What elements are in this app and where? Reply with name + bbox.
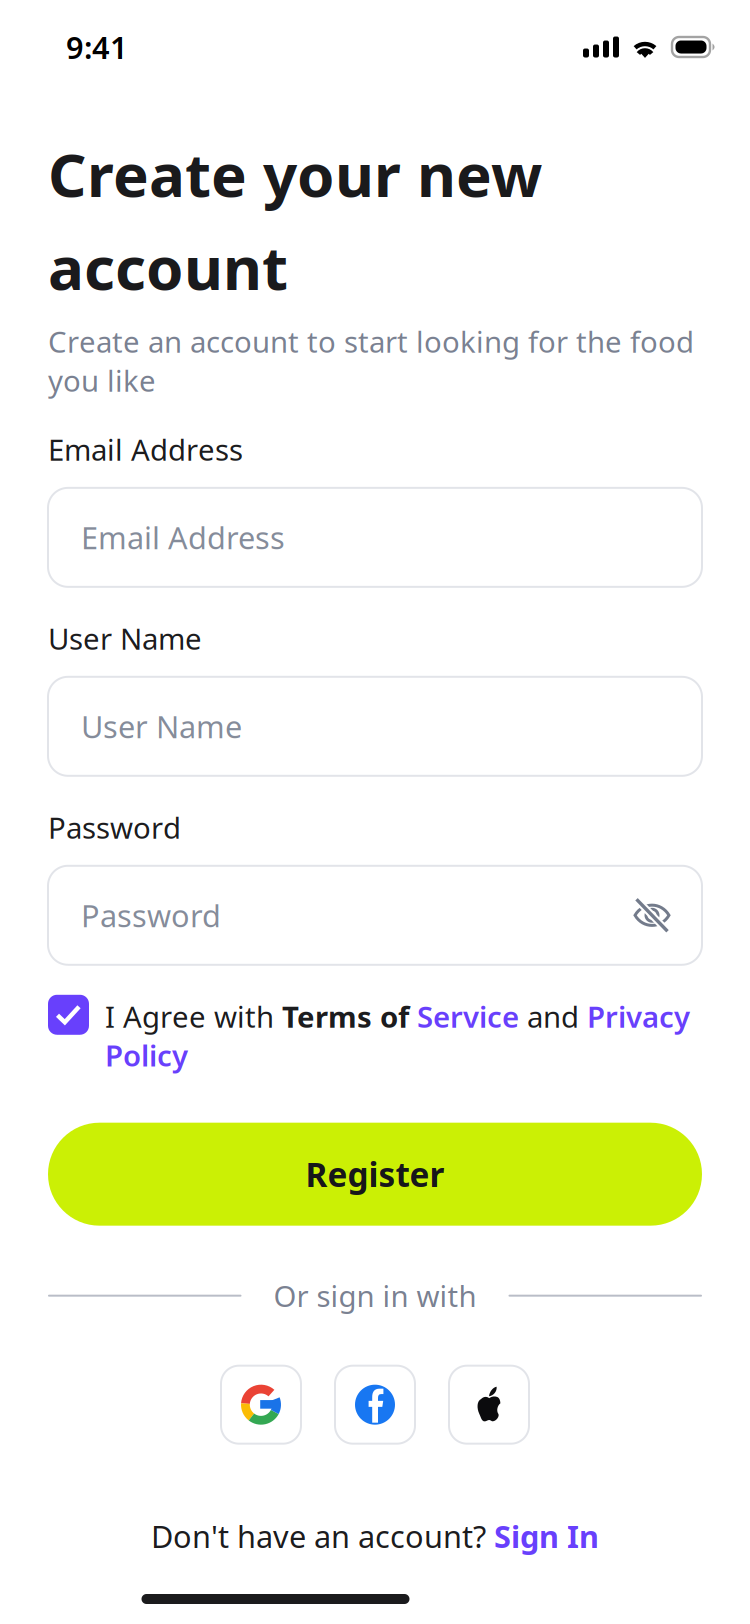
staticText: account: [48, 227, 288, 307]
staticText: 9:41: [66, 27, 128, 67]
staticText: Create an account to start looking for t…: [48, 322, 694, 400]
button[interactable]: I agree with terms: [48, 995, 89, 1035]
staticText: User Name: [48, 619, 202, 658]
staticText: I Agree with Terms of Service and Privac…: [105, 997, 690, 1075]
staticText: Password: [48, 808, 181, 847]
staticText: Register: [305, 1152, 444, 1196]
staticText: Create your new: [48, 134, 542, 214]
staticText: Or sign in with: [273, 1276, 476, 1315]
button[interactable]: Sign in with Facebook: [335, 1366, 415, 1444]
button[interactable]: Register: [48, 1123, 702, 1226]
button[interactable]: Sign in with Google: [221, 1366, 301, 1444]
staticText: Password: [81, 895, 221, 936]
button[interactable]: Sign in with Apple: [449, 1366, 529, 1444]
staticText: Email Address: [48, 430, 243, 469]
staticText: Email Address: [81, 517, 285, 558]
staticText: Sign In: [494, 1516, 599, 1556]
button[interactable]: Sign In: [494, 1516, 599, 1556]
staticText: Don't have an account?: [151, 1516, 494, 1556]
staticText: User Name: [81, 706, 242, 747]
